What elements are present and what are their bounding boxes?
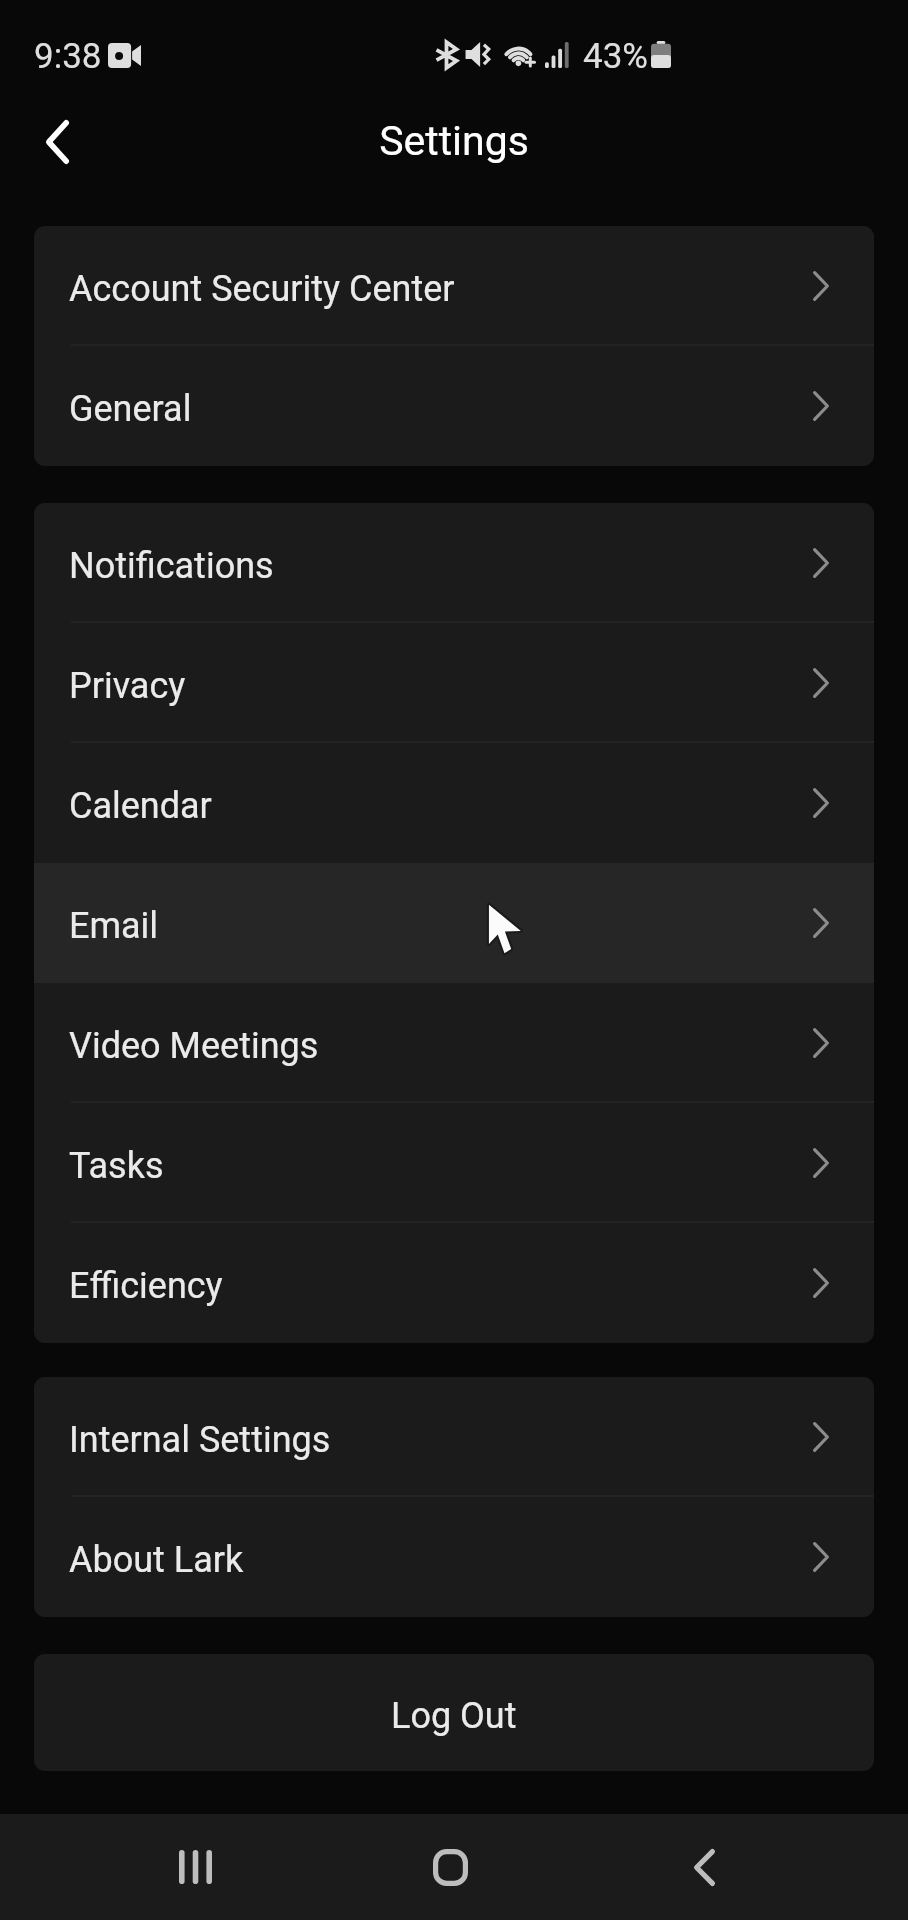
staticText: Video Meetings xyxy=(69,1025,319,1067)
staticText: Tasks xyxy=(69,1145,164,1187)
button[interactable]: Back xyxy=(13,99,101,185)
button[interactable]: Back xyxy=(656,1819,752,1915)
button[interactable]: Account Security Center xyxy=(34,226,874,346)
button[interactable]: Email xyxy=(34,863,874,983)
staticText: Email xyxy=(69,905,159,947)
staticText: Log Out xyxy=(391,1695,517,1737)
button[interactable]: Log Out xyxy=(34,1654,874,1771)
staticText: Internal Settings xyxy=(69,1419,331,1461)
staticText: 9:38 xyxy=(34,36,102,77)
button[interactable]: Home xyxy=(402,1819,498,1915)
staticText: Notifications xyxy=(69,545,274,587)
staticText: Calendar xyxy=(69,785,212,827)
staticText: General xyxy=(69,388,192,430)
button[interactable]: Recent apps xyxy=(147,1819,243,1915)
button[interactable]: About Lark xyxy=(34,1497,874,1617)
button[interactable]: Internal Settings xyxy=(34,1377,874,1497)
staticText: Settings xyxy=(379,117,529,165)
button[interactable]: Calendar xyxy=(34,743,874,863)
button[interactable]: Efficiency xyxy=(34,1223,874,1343)
button[interactable]: Privacy xyxy=(34,623,874,743)
staticText: Account Security Center xyxy=(69,268,455,310)
button[interactable]: Notifications xyxy=(34,503,874,623)
staticText: 43% xyxy=(583,36,648,77)
staticText: Efficiency xyxy=(69,1265,223,1307)
button[interactable]: General xyxy=(34,346,874,466)
staticText: About Lark xyxy=(69,1539,244,1581)
button[interactable]: Video Meetings xyxy=(34,983,874,1103)
button[interactable]: Tasks xyxy=(34,1103,874,1223)
staticText: Privacy xyxy=(69,665,186,707)
